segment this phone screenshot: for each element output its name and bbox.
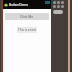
staticText: This is a text: [18, 28, 36, 32]
other: App icon: [4, 3, 8, 7]
button[interactable]: Emulator key: [53, 5, 56, 8]
button[interactable]: Emulator key: [61, 5, 64, 8]
staticText: ButtonDemo: [9, 3, 29, 7]
button[interactable]: Emulator key: [57, 1, 60, 4]
staticText: Click Me: [20, 14, 34, 19]
button[interactable]: Click Me: [5, 13, 49, 20]
button[interactable]: Emulator control: [53, 10, 63, 14]
button[interactable]: This is a text: [17, 27, 37, 33]
button[interactable]: Emulator key: [57, 5, 60, 8]
button[interactable]: App icon: [3, 0, 51, 9]
button[interactable]: Emulator key: [53, 1, 56, 4]
button[interactable]: Emulator key: [61, 1, 64, 4]
